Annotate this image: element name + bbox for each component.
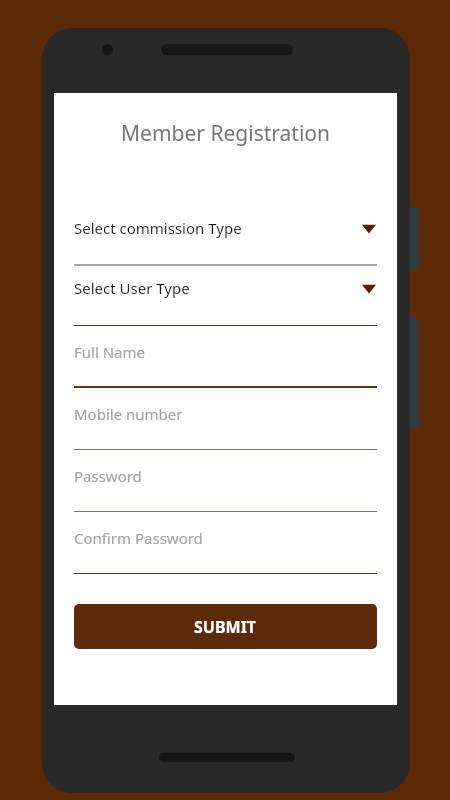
button[interactable]: Select User Type [74,266,377,326]
staticText: Member Registration [74,119,377,148]
button[interactable]: Select commission Type [74,206,377,266]
button[interactable]: SUBMIT [74,604,377,649]
staticText: Select commission Type [74,218,242,238]
staticText: Select User Type [74,278,190,298]
button[interactable]: Confirm Password [74,512,377,574]
staticText: Password [74,466,142,486]
button[interactable]: Mobile number [74,388,377,450]
button[interactable]: Password [74,450,377,512]
other: Open dropdown [361,284,377,294]
staticText: Mobile number [74,404,183,424]
staticText: SUBMIT [194,616,257,638]
staticText: Confirm Password [74,528,203,548]
other: Open dropdown [361,224,377,234]
staticText: Full Name [74,342,145,362]
button[interactable]: Full Name [74,326,377,388]
